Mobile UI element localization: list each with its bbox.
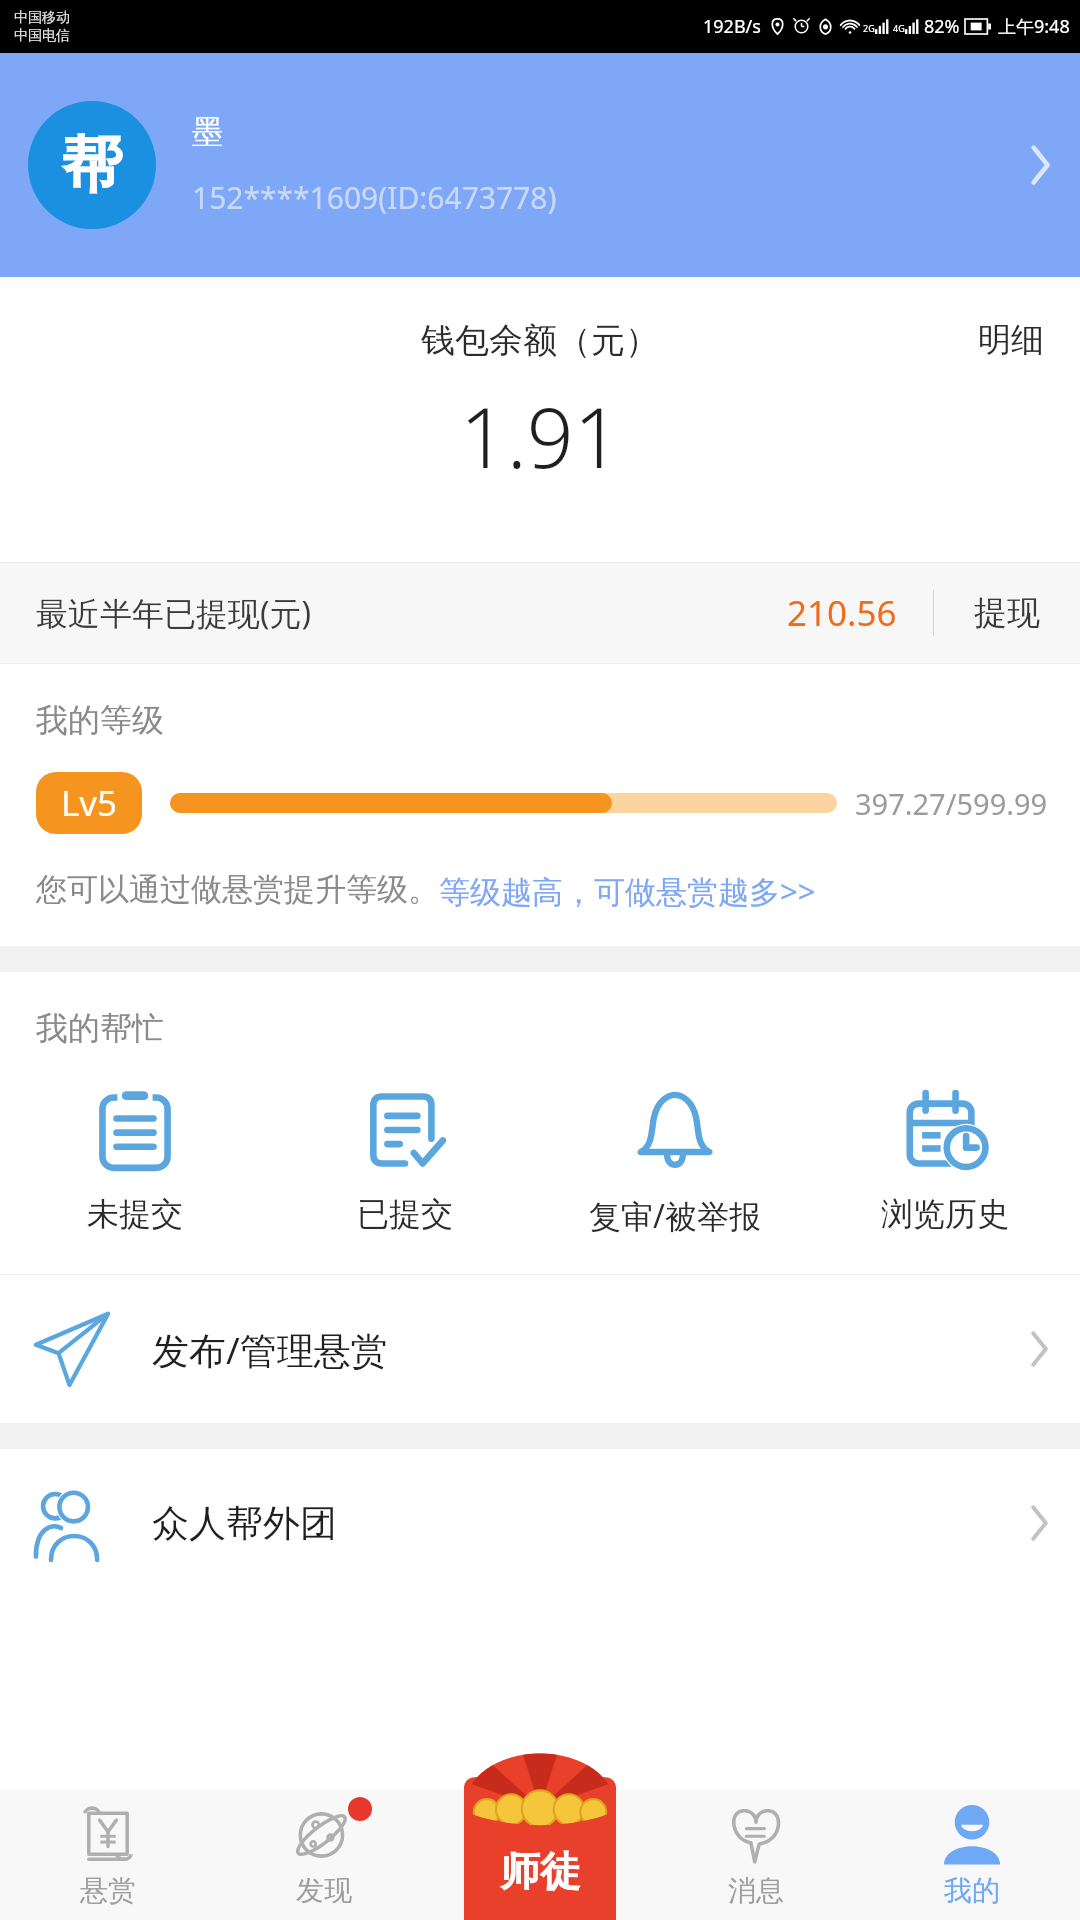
staticText: 您可以通过做悬赏提升等级。 [36, 870, 439, 909]
staticText: 墨 [192, 112, 223, 151]
button[interactable]: 明细 [968, 311, 1054, 369]
staticText: 192B/s [703, 14, 761, 39]
staticText: 悬赏 [80, 1873, 136, 1908]
staticText: 我的等级 [36, 700, 164, 740]
staticText: 发布/管理悬赏 [152, 1324, 388, 1375]
button[interactable]: 浏览历史 [810, 1082, 1080, 1238]
button[interactable]: 提现 [934, 580, 1080, 646]
button[interactable]: 悬赏 [0, 1790, 216, 1920]
staticText: 1.91 [460, 380, 621, 492]
button[interactable]: 发现 [216, 1790, 432, 1920]
staticText: 中国电信 [14, 27, 70, 45]
staticText: 消息 [728, 1873, 784, 1908]
button[interactable]: 等级越高，可做悬赏越多>> [439, 870, 816, 912]
button[interactable]: 已提交 [270, 1082, 540, 1238]
button[interactable]: 复审/被举报 [540, 1082, 810, 1242]
staticText: 我的 [944, 1873, 1000, 1908]
staticText: 4G [893, 22, 905, 34]
button[interactable]: 帮 [0, 53, 1080, 277]
staticText: 上午9:48 [998, 14, 1070, 39]
staticText: 浏览历史 [881, 1194, 1009, 1234]
staticText: 152****1609(ID:6473778) [192, 177, 557, 218]
staticText: 未提交 [87, 1194, 183, 1234]
staticText: 明细 [978, 319, 1044, 361]
staticText: 最近半年已提现(元) [36, 591, 312, 635]
staticText: 复审/被举报 [589, 1194, 761, 1238]
staticText: 我的帮忙 [36, 1008, 164, 1048]
staticText: 师徒 [500, 1846, 580, 1896]
staticText: 提现 [974, 592, 1040, 634]
button[interactable]: 师徒 [464, 1750, 616, 1920]
button[interactable]: 众人帮外团 [0, 1449, 1080, 1597]
button[interactable]: 发布/管理悬赏 [0, 1275, 1080, 1423]
staticText: 210.56 [787, 589, 897, 637]
staticText: 397.27/599.99 [855, 784, 1048, 823]
button[interactable]: 我的 [864, 1790, 1080, 1920]
staticText: Lv5 [61, 779, 118, 827]
staticText: 2G [863, 22, 875, 34]
staticText: 帮 [61, 126, 123, 204]
staticText: 中国移动 [14, 9, 70, 27]
staticText: 众人帮外团 [152, 1500, 337, 1547]
staticText: 已提交 [357, 1194, 453, 1234]
staticText: 发现 [296, 1873, 352, 1908]
staticText: 82% [924, 14, 960, 39]
button[interactable]: 消息 [648, 1790, 864, 1920]
button[interactable]: 未提交 [0, 1082, 270, 1238]
staticText: 钱包余额（元） [421, 319, 659, 362]
staticText: 等级越高，可做悬赏越多>> [439, 870, 816, 912]
